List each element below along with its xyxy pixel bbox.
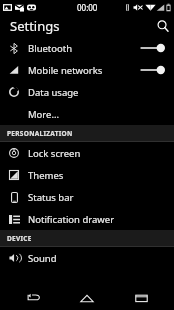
staticText: 00:00 [77, 2, 98, 13]
button[interactable]: Recents [121, 286, 161, 310]
button[interactable]: Toggle [140, 63, 166, 77]
staticText: Settings [10, 17, 60, 35]
staticText: Status bar [28, 191, 74, 204]
button[interactable]: Home [67, 286, 107, 310]
staticText: PERSONALIZATION [7, 129, 73, 138]
staticText: Bluetooth [28, 42, 73, 55]
staticText: Sound [28, 252, 57, 265]
button[interactable]: More... [0, 103, 174, 125]
staticText: Data usage [28, 86, 79, 99]
button[interactable]: Bluetooth [0, 37, 174, 59]
button[interactable]: Search [151, 14, 174, 37]
button[interactable]: Mobile networks [0, 59, 174, 81]
staticText: Notification drawer [28, 213, 115, 226]
button[interactable]: Data usage [0, 81, 174, 103]
button[interactable]: Sound [0, 247, 174, 269]
button[interactable]: Back [14, 286, 54, 310]
button[interactable]: Themes [0, 164, 174, 186]
staticText: DEVICE [7, 234, 32, 243]
button[interactable]: Notification drawer [0, 208, 174, 230]
staticText: More... [28, 108, 60, 121]
button[interactable]: Lock screen [0, 142, 174, 164]
button[interactable]: Toggle [140, 41, 166, 55]
staticText: Lock screen [28, 147, 81, 160]
staticText: Themes [28, 169, 64, 182]
button[interactable]: Status bar [0, 186, 174, 208]
staticText: Mobile networks [28, 64, 103, 77]
